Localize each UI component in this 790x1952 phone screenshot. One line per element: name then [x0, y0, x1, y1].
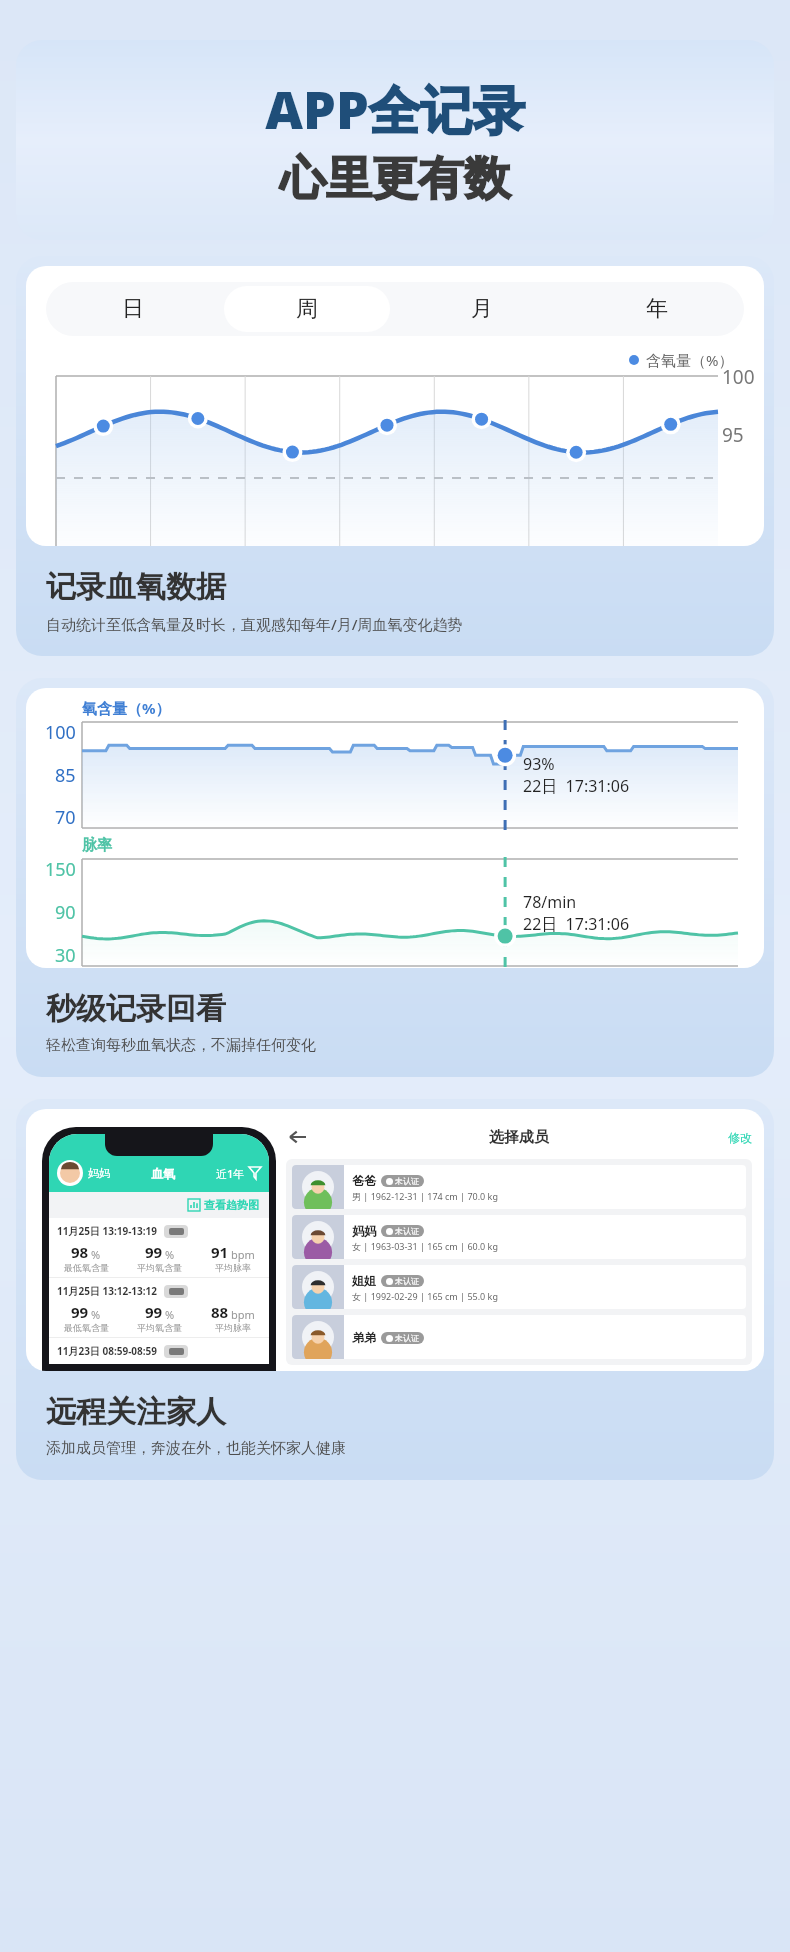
staticText: 月: [471, 295, 493, 323]
staticText: 查看趋势图: [204, 1198, 259, 1212]
button[interactable]: 爸爸: [292, 1165, 746, 1209]
staticText: 血氧: [151, 1166, 175, 1181]
staticText: 妈妈: [88, 1166, 110, 1180]
staticText: 90: [55, 900, 76, 925]
staticText: 11月23日 08:59-08:59: [57, 1344, 158, 1358]
button[interactable]: 周: [224, 286, 390, 332]
button[interactable]: 修改: [728, 1130, 752, 1145]
button[interactable]: 姐姐: [292, 1265, 746, 1309]
staticText: 妈妈: [352, 1223, 376, 1238]
staticText: %: [91, 1307, 101, 1322]
staticText: 爸爸: [352, 1173, 376, 1188]
staticText: 88: [211, 1302, 229, 1322]
staticText: 添加成员管理，奔波在外，也能关怀家人健康: [46, 1439, 346, 1458]
staticText: 自动统计至低含氧量及时长，直观感知每年/月/周血氧变化趋势: [46, 614, 463, 634]
staticText: 93%: [523, 753, 555, 775]
staticText: 年: [646, 295, 668, 323]
staticText: 11月25日 13:12-13:12: [57, 1284, 158, 1298]
button[interactable]: 年: [573, 286, 740, 332]
staticText: 91: [211, 1242, 229, 1262]
staticText: 女 | 1992-02-29 | 165 cm | 55.0 kg: [352, 1290, 498, 1302]
staticText: 心里更有数: [280, 150, 510, 208]
staticText: 150: [45, 857, 76, 882]
staticText: 85: [55, 763, 76, 788]
staticText: 100: [45, 720, 76, 745]
staticText: 选择成员: [489, 1128, 549, 1147]
staticText: 22日 17:31:06: [523, 775, 630, 797]
button[interactable]: 月: [398, 286, 565, 332]
button[interactable]: 日: [50, 286, 216, 332]
staticText: 平均氧含量: [137, 1262, 182, 1273]
staticText: 最低氧含量: [64, 1262, 109, 1273]
staticText: 最低氧含量: [64, 1322, 109, 1333]
staticText: 弟弟: [352, 1330, 376, 1345]
staticText: 周: [296, 295, 318, 323]
staticText: 78/min: [523, 891, 577, 913]
staticText: 99: [145, 1302, 163, 1322]
staticText: APP全记录: [265, 73, 525, 144]
staticText: 99: [71, 1302, 89, 1322]
staticText: 脉率: [82, 836, 112, 855]
staticText: 95: [722, 422, 744, 448]
staticText: 未认证: [395, 1276, 419, 1286]
staticText: 秒级记录回看: [46, 990, 226, 1028]
staticText: 姐姐: [352, 1273, 376, 1288]
staticText: 未认证: [395, 1226, 419, 1236]
staticText: 氧含量（%）: [82, 698, 171, 718]
staticText: 修改: [728, 1130, 752, 1145]
button[interactable]: 妈妈: [292, 1215, 746, 1259]
staticText: 男 | 1962-12-31 | 174 cm | 70.0 kg: [352, 1190, 498, 1202]
staticText: 未认证: [395, 1333, 419, 1343]
staticText: 含氧量（%）: [646, 350, 734, 370]
staticText: 11月25日 13:19-13:19: [57, 1224, 158, 1238]
staticText: 女 | 1963-03-31 | 165 cm | 60.0 kg: [352, 1240, 498, 1252]
staticText: 近1年: [216, 1166, 245, 1181]
staticText: %: [165, 1247, 175, 1262]
staticText: 轻松查询每秒血氧状态，不漏掉任何变化: [46, 1036, 316, 1055]
staticText: 30: [55, 943, 76, 968]
staticText: 22日 17:31:06: [523, 913, 630, 935]
staticText: 98: [71, 1242, 89, 1262]
staticText: 平均脉率: [215, 1262, 251, 1273]
staticText: 平均脉率: [215, 1322, 251, 1333]
staticText: bpm: [231, 1307, 255, 1322]
staticText: 70: [55, 805, 76, 830]
staticText: 平均氧含量: [137, 1322, 182, 1333]
staticText: %: [165, 1307, 175, 1322]
staticText: 记录血氧数据: [46, 568, 226, 606]
staticText: 99: [145, 1242, 163, 1262]
staticText: 100: [722, 364, 755, 390]
staticText: %: [91, 1247, 101, 1262]
button[interactable]: Back: [286, 1125, 310, 1149]
staticText: 远程关注家人: [46, 1393, 226, 1431]
staticText: 未认证: [395, 1176, 419, 1186]
staticText: 日: [122, 295, 144, 323]
staticText: bpm: [231, 1247, 255, 1262]
button[interactable]: 弟弟: [292, 1315, 746, 1359]
